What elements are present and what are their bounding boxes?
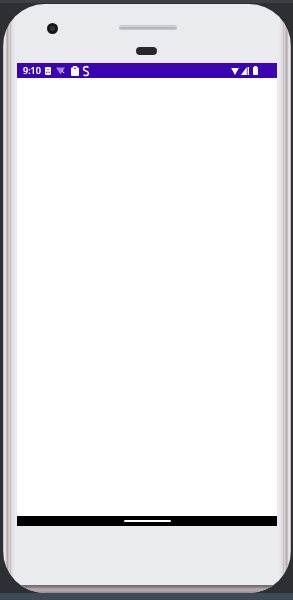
other: Home bbox=[124, 520, 171, 522]
staticText: 9:10 bbox=[23, 64, 41, 76]
